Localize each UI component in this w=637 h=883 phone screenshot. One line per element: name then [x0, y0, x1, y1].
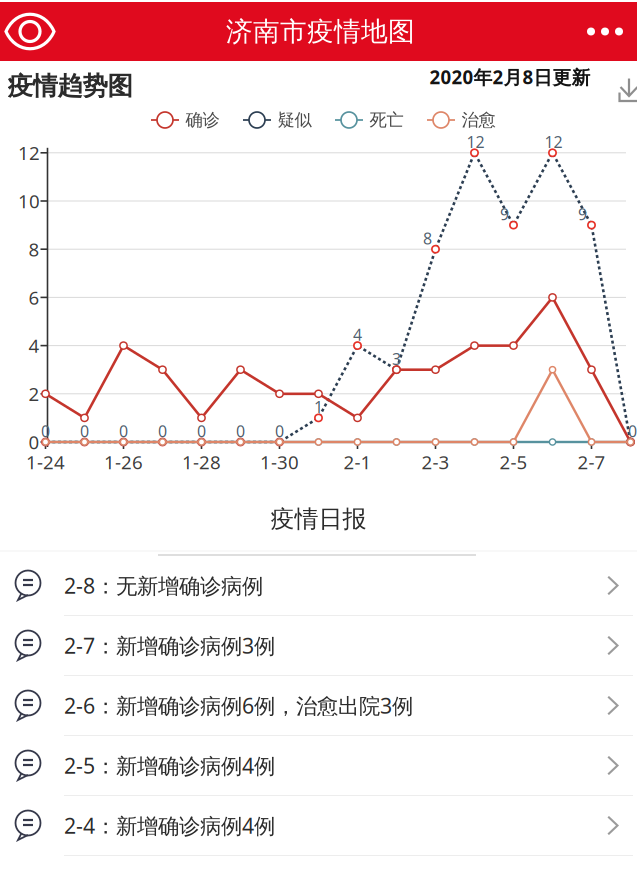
button[interactable]: 2-5：新增确诊病例4例 — [0, 736, 637, 796]
staticText: 1-28 — [182, 450, 221, 474]
button[interactable]: 2-8：无新增确诊病例 — [0, 556, 637, 616]
staticText: 疫情日报 — [270, 504, 366, 534]
staticText: 12 — [466, 131, 484, 152]
staticText: 1-26 — [104, 450, 143, 474]
staticText: 12 — [544, 131, 562, 152]
staticText: 治愈 — [461, 109, 495, 131]
staticText: 济南市疫情地图 — [226, 15, 415, 48]
staticText: 0 — [275, 420, 284, 442]
staticText: 2-3 — [421, 450, 449, 474]
staticText: 9 — [500, 203, 509, 225]
staticText: 0 — [236, 420, 245, 442]
staticText: 12 — [18, 140, 40, 165]
staticText: 3 — [392, 348, 401, 369]
staticText: 1 — [314, 396, 323, 417]
staticText: 8 — [28, 237, 39, 262]
staticText: 4 — [353, 324, 362, 345]
staticText: 2-4：新增确诊病例4例 — [64, 811, 275, 840]
staticText: 0 — [80, 420, 89, 442]
button[interactable]: 2-7：新增确诊病例3例 — [0, 616, 637, 676]
staticText: 0 — [628, 420, 637, 442]
staticText: 0 — [197, 420, 206, 442]
staticText: 疫情趋势图 — [7, 70, 132, 101]
button[interactable]: Download — [618, 77, 637, 102]
staticText: 6 — [28, 285, 39, 310]
button[interactable]: Watch — [0, 12, 56, 50]
staticText: 确诊 — [185, 109, 219, 131]
staticText: 0 — [158, 420, 167, 442]
staticText: 0 — [119, 420, 128, 442]
button[interactable]: 2-6：新增确诊病例6例，治愈出院3例 — [0, 676, 637, 736]
button[interactable]: 疫情日报 — [0, 484, 637, 554]
staticText: 1-30 — [260, 450, 299, 474]
staticText: 9 — [578, 203, 587, 225]
button[interactable]: More — [585, 27, 637, 35]
staticText: 2-5 — [499, 450, 527, 474]
staticText: 2-6：新增确诊病例6例，治愈出院3例 — [64, 691, 413, 720]
staticText: 1-24 — [26, 450, 65, 474]
staticText: 疑似 — [277, 109, 311, 131]
staticText: 2-7：新增确诊病例3例 — [64, 631, 275, 660]
staticText: 8 — [423, 228, 432, 249]
button[interactable]: 2-4：新增确诊病例4例 — [0, 796, 637, 856]
staticText: 2 — [28, 381, 39, 406]
staticText: 0 — [28, 430, 39, 454]
staticText: 2020年2月8日更新 — [429, 65, 590, 89]
staticText: 2-1 — [343, 450, 371, 474]
staticText: 2-8：无新增确诊病例 — [64, 571, 263, 600]
staticText: 2-5：新增确诊病例4例 — [64, 751, 275, 780]
staticText: 4 — [28, 333, 39, 358]
staticText: 死亡 — [369, 109, 403, 131]
staticText: 10 — [18, 189, 40, 213]
staticText: 2-7 — [577, 450, 605, 474]
staticText: 0 — [41, 420, 50, 442]
